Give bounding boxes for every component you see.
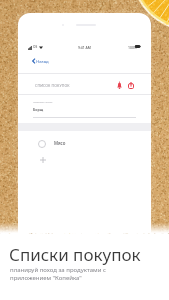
staticText: 100% — [128, 45, 137, 50]
staticText: Мясо — [54, 140, 66, 146]
staticText: OS — [33, 45, 38, 49]
staticText: Списки покупок — [9, 243, 141, 266]
button[interactable]: Notifications — [114, 80, 124, 90]
button[interactable]: Add item — [40, 157, 46, 163]
staticText: Борщ — [33, 107, 44, 112]
staticText: Назад — [36, 58, 49, 64]
staticText: 9:41 AM — [78, 45, 91, 50]
button[interactable]: Назад — [32, 57, 66, 65]
staticText: название списка — [33, 100, 53, 103]
button[interactable]: Share — [126, 80, 136, 90]
staticText: СПИСОК ПОКУПОК — [35, 83, 70, 88]
button[interactable]: Toggle Мясо — [38, 140, 46, 148]
staticText: планируй поход за продуктами с приложени… — [10, 266, 106, 282]
